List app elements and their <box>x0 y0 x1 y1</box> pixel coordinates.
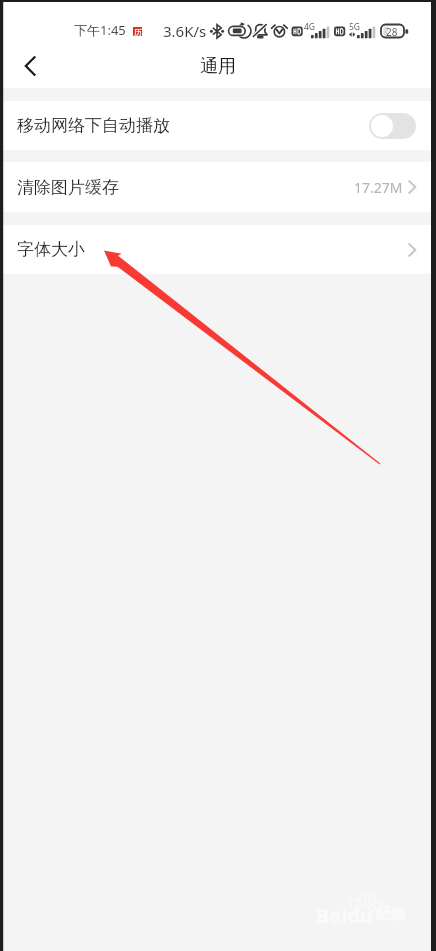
button[interactable]: 字体大小 <box>0 225 436 274</box>
staticText: 通用 <box>200 55 236 78</box>
button[interactable]: Back <box>12 48 48 84</box>
staticText: 字体大小 <box>17 239 85 260</box>
staticText: 28 <box>386 25 398 39</box>
staticText: 5G <box>349 21 361 33</box>
staticText: 3.6K/s <box>163 21 207 41</box>
staticText: 4G <box>304 21 316 33</box>
staticText: 清除图片缓存 <box>17 177 119 198</box>
staticText: 历 <box>134 27 142 36</box>
staticText: 移动网络下自动播放 <box>17 115 170 136</box>
button[interactable]: 清除图片缓存 <box>0 162 436 212</box>
button[interactable]: 移动网络下自动播放 <box>0 101 436 150</box>
button[interactable]: Toggle mobile network autoplay <box>369 113 416 139</box>
staticText: 下午1:45 <box>74 21 126 39</box>
staticText: 17.27M <box>354 178 403 197</box>
